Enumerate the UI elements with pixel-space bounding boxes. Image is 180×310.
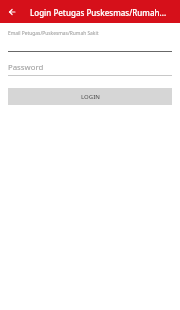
button[interactable]: LOGIN [8,88,172,105]
staticText: Password [8,62,44,73]
button[interactable]: Email Petugas/Puskesmas/Rumah Sakit [8,23,172,52]
staticText: Email Petugas/Puskesmas/Rumah Sakit [8,30,99,37]
staticText: LOGIN [81,93,100,101]
button[interactable]: Password [8,52,172,76]
button[interactable]: Navigate up [3,3,20,20]
staticText: Login Petugas Puskesmas/Rumah... [30,7,167,18]
